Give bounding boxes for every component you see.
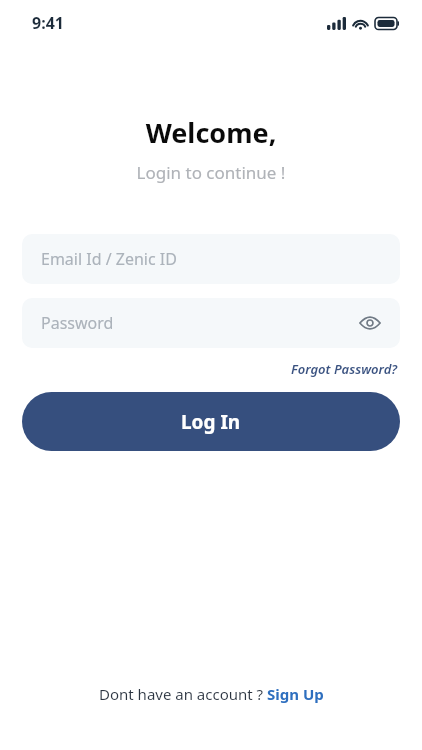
staticText: Password [41,312,114,334]
staticText: Email Id / Zenic ID [41,248,177,270]
button[interactable]: Forgot Password? [289,358,400,380]
staticText: Login to continue ! [0,161,422,184]
staticText: Welcome, [0,114,422,151]
staticText: Forgot Password? [291,360,398,378]
staticText: Dont have an account ? Sign Up [99,684,324,704]
staticText: 9:41 [32,12,64,34]
button[interactable]: Email Id / Zenic ID [22,234,400,284]
button[interactable]: Dont have an account ? Sign Up [93,680,330,708]
staticText: Log In [181,409,241,435]
button[interactable]: Log In [22,392,400,451]
button[interactable]: Password [22,298,400,348]
button[interactable]: Show password [354,307,386,339]
